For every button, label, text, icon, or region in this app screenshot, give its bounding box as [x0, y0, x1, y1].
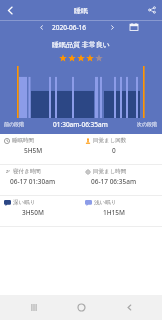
button[interactable]: Share — [142, 0, 162, 20]
staticText: 睡眠 — [74, 6, 88, 15]
staticText: 浅い眠り — [94, 199, 117, 206]
button[interactable]: Pick date — [126, 20, 142, 34]
button[interactable]: 目覚まし回数 — [81, 134, 162, 164]
staticText: 2020-06-16 — [52, 23, 86, 32]
button[interactable]: 深い眠り — [0, 196, 81, 226]
staticText: 5H5M — [24, 146, 43, 155]
staticText: 深い眠り — [13, 199, 36, 206]
button[interactable]: Back — [114, 295, 144, 320]
button[interactable]: 目覚まし時間 — [81, 165, 162, 195]
staticText: 目覚まし時間 — [93, 168, 127, 175]
button[interactable]: zᶻ — [0, 165, 81, 195]
button[interactable]: Back — [0, 0, 20, 20]
button[interactable]: Home — [66, 295, 96, 320]
staticText: zᶻ — [6, 168, 10, 175]
button[interactable]: Previous day — [33, 20, 49, 34]
button[interactable]: 前の段階 — [4, 121, 25, 127]
staticText: 1H15M — [103, 208, 125, 217]
button[interactable]: 睡眠時間 — [0, 134, 81, 164]
staticText: 01:30am-06:35am — [53, 120, 108, 129]
staticText: 目覚まし回数 — [93, 137, 127, 144]
staticText: 睡眠品質 非常良い — [0, 40, 162, 50]
button[interactable]: Next day — [104, 20, 120, 34]
staticText: 06-17 01:30am — [10, 177, 56, 186]
staticText: 3H50M — [22, 208, 44, 217]
staticText: 06-17 06:35am — [91, 177, 137, 186]
button[interactable]: 浅い眠り — [81, 196, 162, 226]
button[interactable]: Recents — [18, 295, 48, 320]
button[interactable]: 次の段階 — [137, 121, 158, 127]
staticText: 0 — [112, 146, 116, 155]
staticText: 睡眠時間 — [12, 137, 34, 144]
staticText: 寝付き時間 — [13, 168, 41, 175]
